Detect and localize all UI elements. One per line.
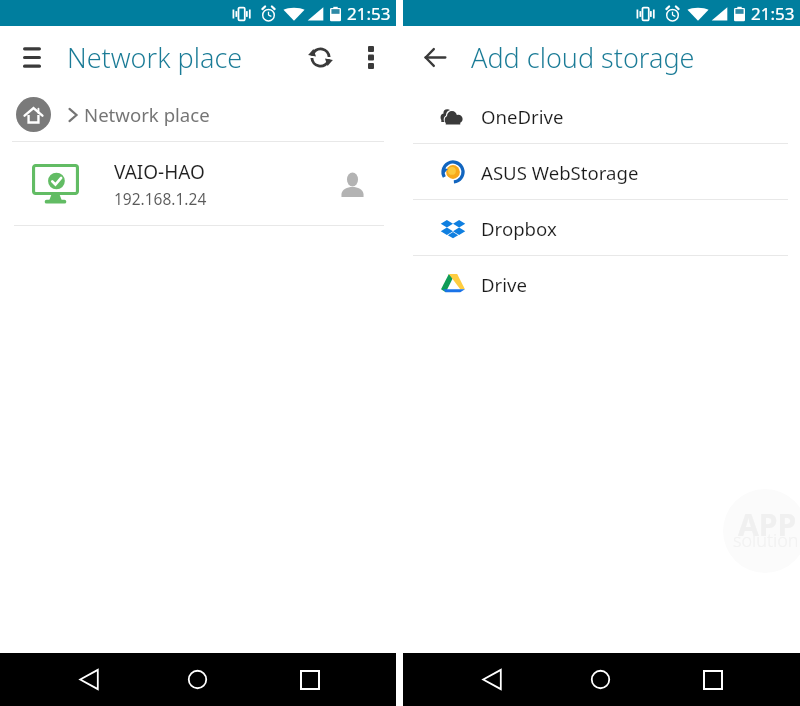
staticText: 192.168.1.24 [114,188,207,209]
staticText: 21:53 [751,2,795,25]
button[interactable]: Back [470,658,513,701]
button[interactable]: Dropbox [403,200,800,256]
button[interactable]: VAIO-HAO [0,142,396,225]
button[interactable]: Account [328,160,376,208]
staticText: VAIO-HAO [114,159,205,185]
staticText: ASUS WebStorage [481,160,639,185]
staticText: Dropbox [481,216,557,241]
staticText: Network place [67,39,243,76]
staticText: Add cloud storage [471,39,695,76]
button[interactable]: ASUS WebStorage [403,144,800,200]
button[interactable]: Home [176,658,219,701]
staticText: solution [733,528,799,553]
button[interactable]: Recents [288,658,331,701]
button[interactable]: Recents [691,658,734,701]
button[interactable]: OneDrive [403,88,800,144]
button[interactable]: Drive [403,256,800,312]
staticText: Network place [84,102,210,127]
staticText: 21:53 [347,2,391,25]
button[interactable]: Refresh [298,35,342,79]
staticText: APP [738,504,797,545]
button[interactable]: Home [579,658,622,701]
button[interactable]: Back [417,39,453,75]
button[interactable]: Network place [0,88,396,141]
button[interactable]: Back [67,658,110,701]
button[interactable]: Menu [14,39,50,75]
button[interactable]: More options [350,36,392,78]
staticText: Drive [481,272,527,297]
staticText: OneDrive [481,104,564,129]
